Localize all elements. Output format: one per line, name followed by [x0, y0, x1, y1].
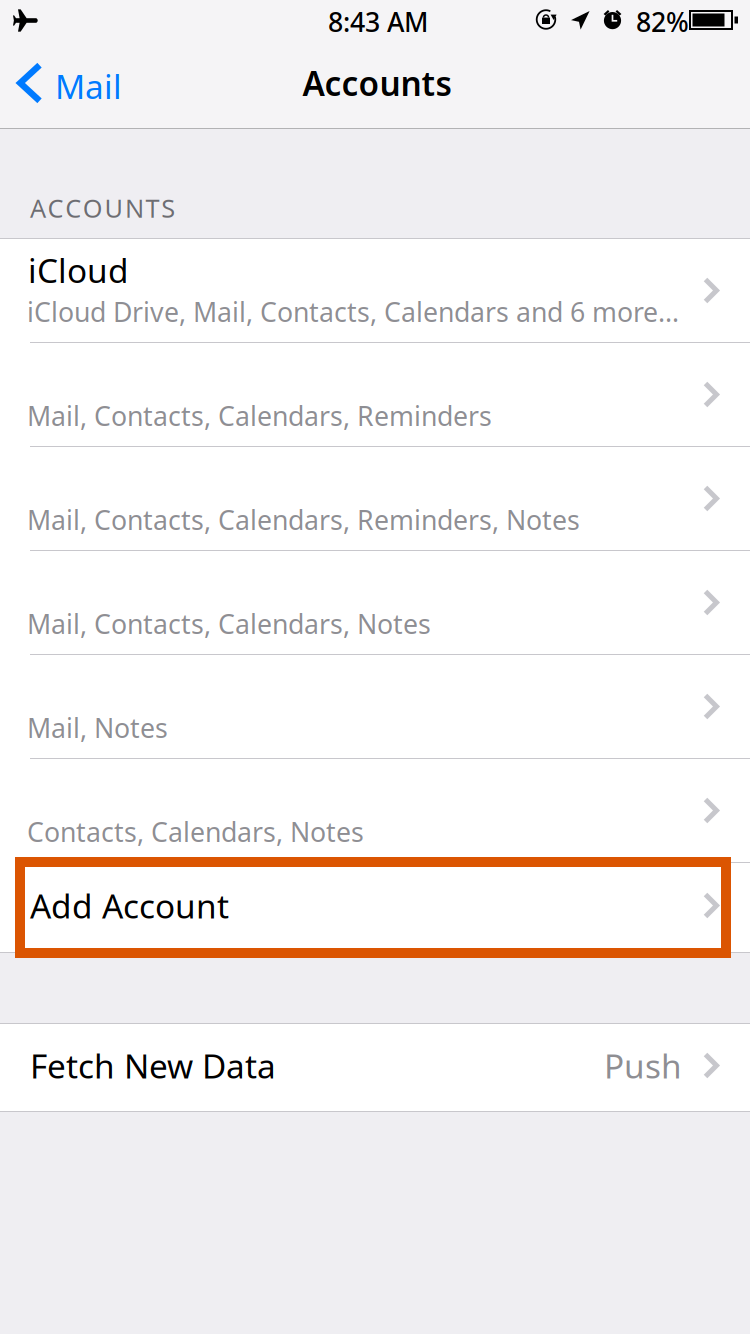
staticText: iCloud — [28, 248, 129, 292]
staticText: Push — [604, 1043, 682, 1088]
staticText: S — [161, 191, 175, 225]
staticText: Mail, Contacts, Calendars, Reminders — [27, 398, 492, 433]
staticText: A — [30, 191, 46, 225]
button[interactable]: Mail — [0, 40, 130, 128]
button[interactable] — [0, 551, 750, 654]
staticText: C — [65, 191, 81, 225]
staticText: Fetch New Data — [30, 1043, 276, 1088]
staticText: C — [48, 191, 64, 225]
staticText: T — [146, 191, 160, 225]
button[interactable]: Fetch New Data — [0, 1024, 750, 1111]
staticText: Mail — [55, 64, 122, 108]
staticText: 82% — [636, 4, 689, 39]
staticText: Accounts — [302, 61, 451, 105]
staticText: Add Account — [30, 883, 229, 928]
staticText: 8:43 AM — [328, 4, 428, 39]
button[interactable] — [0, 447, 750, 550]
button[interactable]: iCloud — [0, 239, 750, 342]
staticText: O — [83, 191, 103, 225]
staticText: Contacts, Calendars, Notes — [27, 814, 364, 849]
button[interactable] — [0, 759, 750, 862]
staticText: Mail, Contacts, Calendars, Notes — [27, 606, 431, 641]
button[interactable] — [0, 343, 750, 446]
button[interactable]: Add Account — [0, 863, 750, 952]
staticText: N — [125, 191, 144, 225]
staticText: Mail, Notes — [27, 710, 168, 745]
staticText: iCloud Drive, Mail, Contacts, Calendars … — [27, 294, 679, 329]
button[interactable] — [0, 655, 750, 758]
staticText: Mail, Contacts, Calendars, Reminders, No… — [27, 502, 580, 537]
staticText: U — [104, 191, 123, 225]
